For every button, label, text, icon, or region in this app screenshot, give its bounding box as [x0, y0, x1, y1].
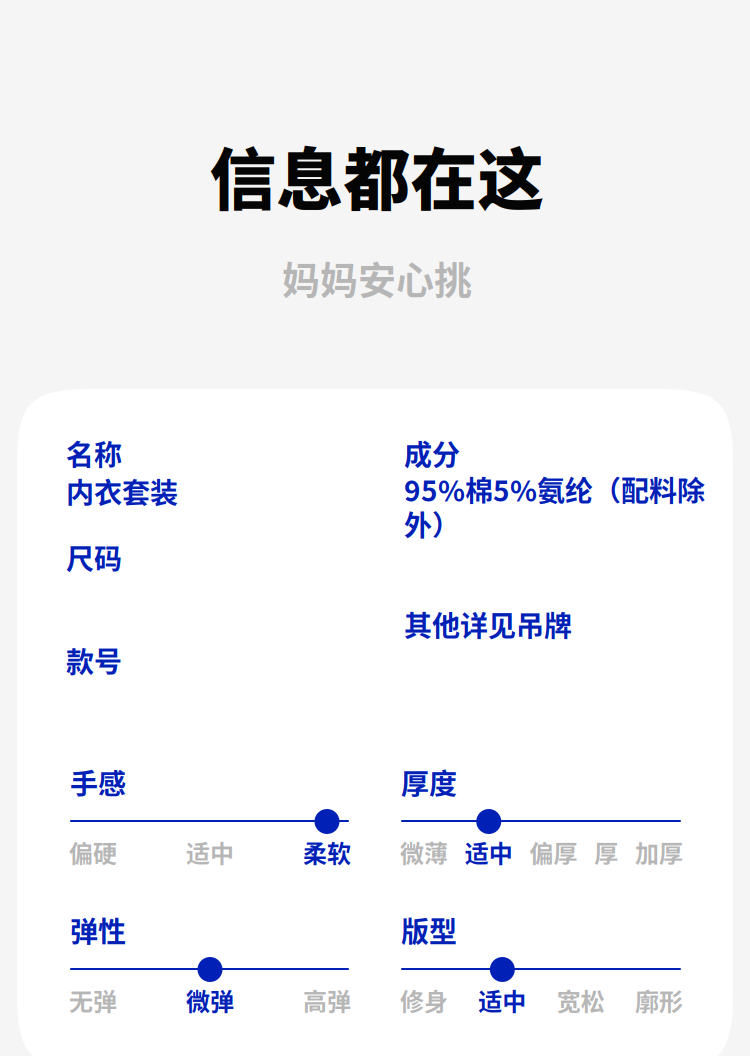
staticText: 尺码 [66, 537, 122, 577]
button[interactable]: 柔软 [303, 809, 351, 865]
staticText: 偏硬 [69, 804, 117, 839]
staticText: 偏厚 [529, 835, 577, 869]
staticText: 其他详见吊牌 [404, 604, 572, 644]
staticText: 偏硬 [69, 835, 117, 869]
staticText: 柔软 [303, 835, 351, 869]
staticText: 妈妈安心挑 [282, 250, 472, 305]
staticText: 适中 [186, 835, 234, 869]
staticText: 适中 [478, 952, 526, 987]
staticText: 版型 [401, 910, 457, 950]
button[interactable]: 微弹 [186, 957, 234, 1013]
staticText: 适中 [465, 835, 513, 869]
staticText: 加厚 [635, 835, 683, 869]
button[interactable]: 适中 [478, 957, 526, 1013]
staticText: 无弹 [69, 952, 117, 987]
button[interactable]: 廓形 [635, 957, 683, 1013]
staticText: 修身 [400, 983, 448, 1017]
staticText: 修身 [400, 952, 448, 987]
staticText: 适中 [478, 983, 526, 1017]
button[interactable]: 厚 [594, 809, 618, 865]
button[interactable]: 适中 [186, 809, 234, 865]
button[interactable]: 高弹 [303, 957, 351, 1013]
button[interactable]: 宽松 [557, 957, 605, 1013]
button[interactable]: 微薄 [400, 809, 448, 865]
staticText: 宽松 [557, 983, 605, 1017]
staticText: 宽松 [557, 952, 605, 987]
staticText: 微弹 [186, 983, 234, 1017]
button[interactable]: 加厚 [635, 809, 683, 865]
staticText: 厚度 [401, 762, 457, 802]
staticText: 弹性 [70, 910, 126, 950]
staticText: 手感 [70, 762, 126, 802]
button[interactable]: 修身 [400, 957, 448, 1013]
staticText: 廓形 [635, 952, 683, 987]
button[interactable]: 无弹 [69, 957, 117, 1013]
staticText: 款号 [66, 640, 122, 680]
staticText: 适中 [465, 804, 513, 839]
staticText: 95%棉5%氨纶（配料除外） [404, 469, 705, 544]
staticText: 内衣套装 [66, 471, 178, 511]
staticText: 微薄 [400, 804, 448, 839]
staticText: 名称 [66, 433, 122, 473]
staticText: 微薄 [400, 835, 448, 869]
staticText: 厚 [594, 804, 618, 839]
staticText: 高弹 [303, 952, 351, 987]
staticText: 加厚 [635, 804, 683, 839]
button[interactable]: 适中 [465, 809, 513, 865]
button[interactable]: 偏厚 [529, 809, 577, 865]
staticText: 信息都在这 [209, 127, 544, 223]
staticText: 微弹 [186, 952, 234, 987]
staticText: 厚 [594, 835, 618, 869]
staticText: 廓形 [635, 983, 683, 1017]
staticText: 成分 [404, 433, 460, 473]
button[interactable]: 偏硬 [69, 809, 117, 865]
staticText: 无弹 [69, 983, 117, 1017]
staticText: 高弹 [303, 983, 351, 1017]
staticText: 偏厚 [529, 804, 577, 839]
staticText: 适中 [186, 804, 234, 839]
staticText: 柔软 [303, 804, 351, 839]
